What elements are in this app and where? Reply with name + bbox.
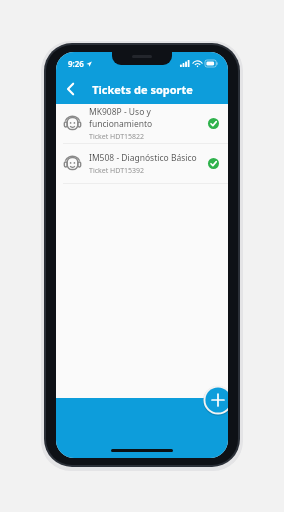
button[interactable]: IM508 - Diagnóstico Básico bbox=[56, 144, 228, 183]
button[interactable]: Back bbox=[56, 75, 84, 103]
staticText: Ticket HDT15822 bbox=[89, 132, 145, 142]
staticText: MK908P - Uso y funcionamiento bbox=[89, 106, 202, 130]
staticText: 9:26 bbox=[68, 58, 84, 69]
staticText: IM508 - Diagnóstico Básico bbox=[89, 152, 197, 164]
staticText: Ticket HDT15392 bbox=[89, 166, 145, 176]
staticText: Tickets de soporte bbox=[92, 82, 193, 97]
button[interactable]: Add ticket bbox=[203, 385, 228, 415]
button[interactable]: MK908P - Uso y funcionamiento bbox=[56, 104, 228, 143]
